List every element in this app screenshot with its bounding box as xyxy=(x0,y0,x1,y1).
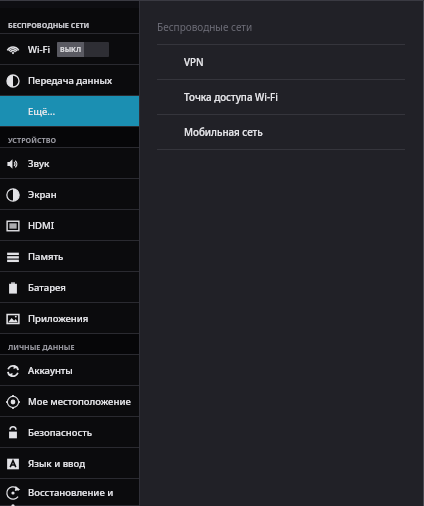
button[interactable]: HDMI xyxy=(0,210,140,241)
staticText: Язык и ввод xyxy=(28,457,86,470)
button[interactable]: Восстановление и сброс xyxy=(0,479,140,506)
staticText: Wi-Fi xyxy=(28,43,51,56)
staticText: HDMI xyxy=(28,219,55,232)
staticText: Память xyxy=(28,250,64,263)
staticText: Экран xyxy=(28,188,57,201)
staticText: Мое местоположение xyxy=(28,395,131,408)
button[interactable]: Ещё... xyxy=(0,96,140,127)
button[interactable]: Звук xyxy=(0,148,140,179)
button[interactable]: VPN xyxy=(140,45,424,80)
staticText: Звук xyxy=(28,157,50,170)
button[interactable]: Экран xyxy=(0,179,140,210)
staticText: ЛИЧНЫЕ ДАННЫЕ xyxy=(8,342,75,352)
staticText: Безопасность xyxy=(28,426,93,439)
staticText: БЕСПРОВОДНЫЕ СЕТИ xyxy=(8,20,90,30)
staticText: Батарея xyxy=(28,281,66,294)
staticText: Приложения xyxy=(28,312,89,325)
staticText: VPN xyxy=(184,56,204,69)
button[interactable]: Батарея xyxy=(0,272,140,303)
button[interactable]: Аккаунты xyxy=(0,355,140,386)
staticText: Точка доступа Wi-Fi xyxy=(184,91,278,104)
staticText: ВЫКЛ xyxy=(60,45,82,55)
staticText: Восстановление и сброс xyxy=(28,486,134,499)
staticText: Ещё... xyxy=(28,105,56,118)
button[interactable]: Точка доступа Wi-Fi xyxy=(140,80,424,115)
staticText: УСТРОЙСТВО xyxy=(8,135,57,145)
staticText: Аккаунты xyxy=(28,364,73,377)
button[interactable]: Передача данных xyxy=(0,65,140,96)
staticText: Мобильная сеть xyxy=(184,126,263,139)
button[interactable]: Wi-Fi xyxy=(0,34,140,65)
button[interactable]: Мобильная сеть xyxy=(140,115,424,150)
button[interactable]: Мое местоположение xyxy=(0,386,140,417)
button[interactable]: Память xyxy=(0,241,140,272)
button[interactable]: Язык и ввод xyxy=(0,448,140,479)
staticText: Передача данных xyxy=(28,74,112,87)
button[interactable]: Приложения xyxy=(0,303,140,334)
staticText: Беспроводные сети xyxy=(157,20,253,34)
button[interactable]: Wi-Fi switch, off xyxy=(57,42,109,57)
button[interactable]: Безопасность xyxy=(0,417,140,448)
